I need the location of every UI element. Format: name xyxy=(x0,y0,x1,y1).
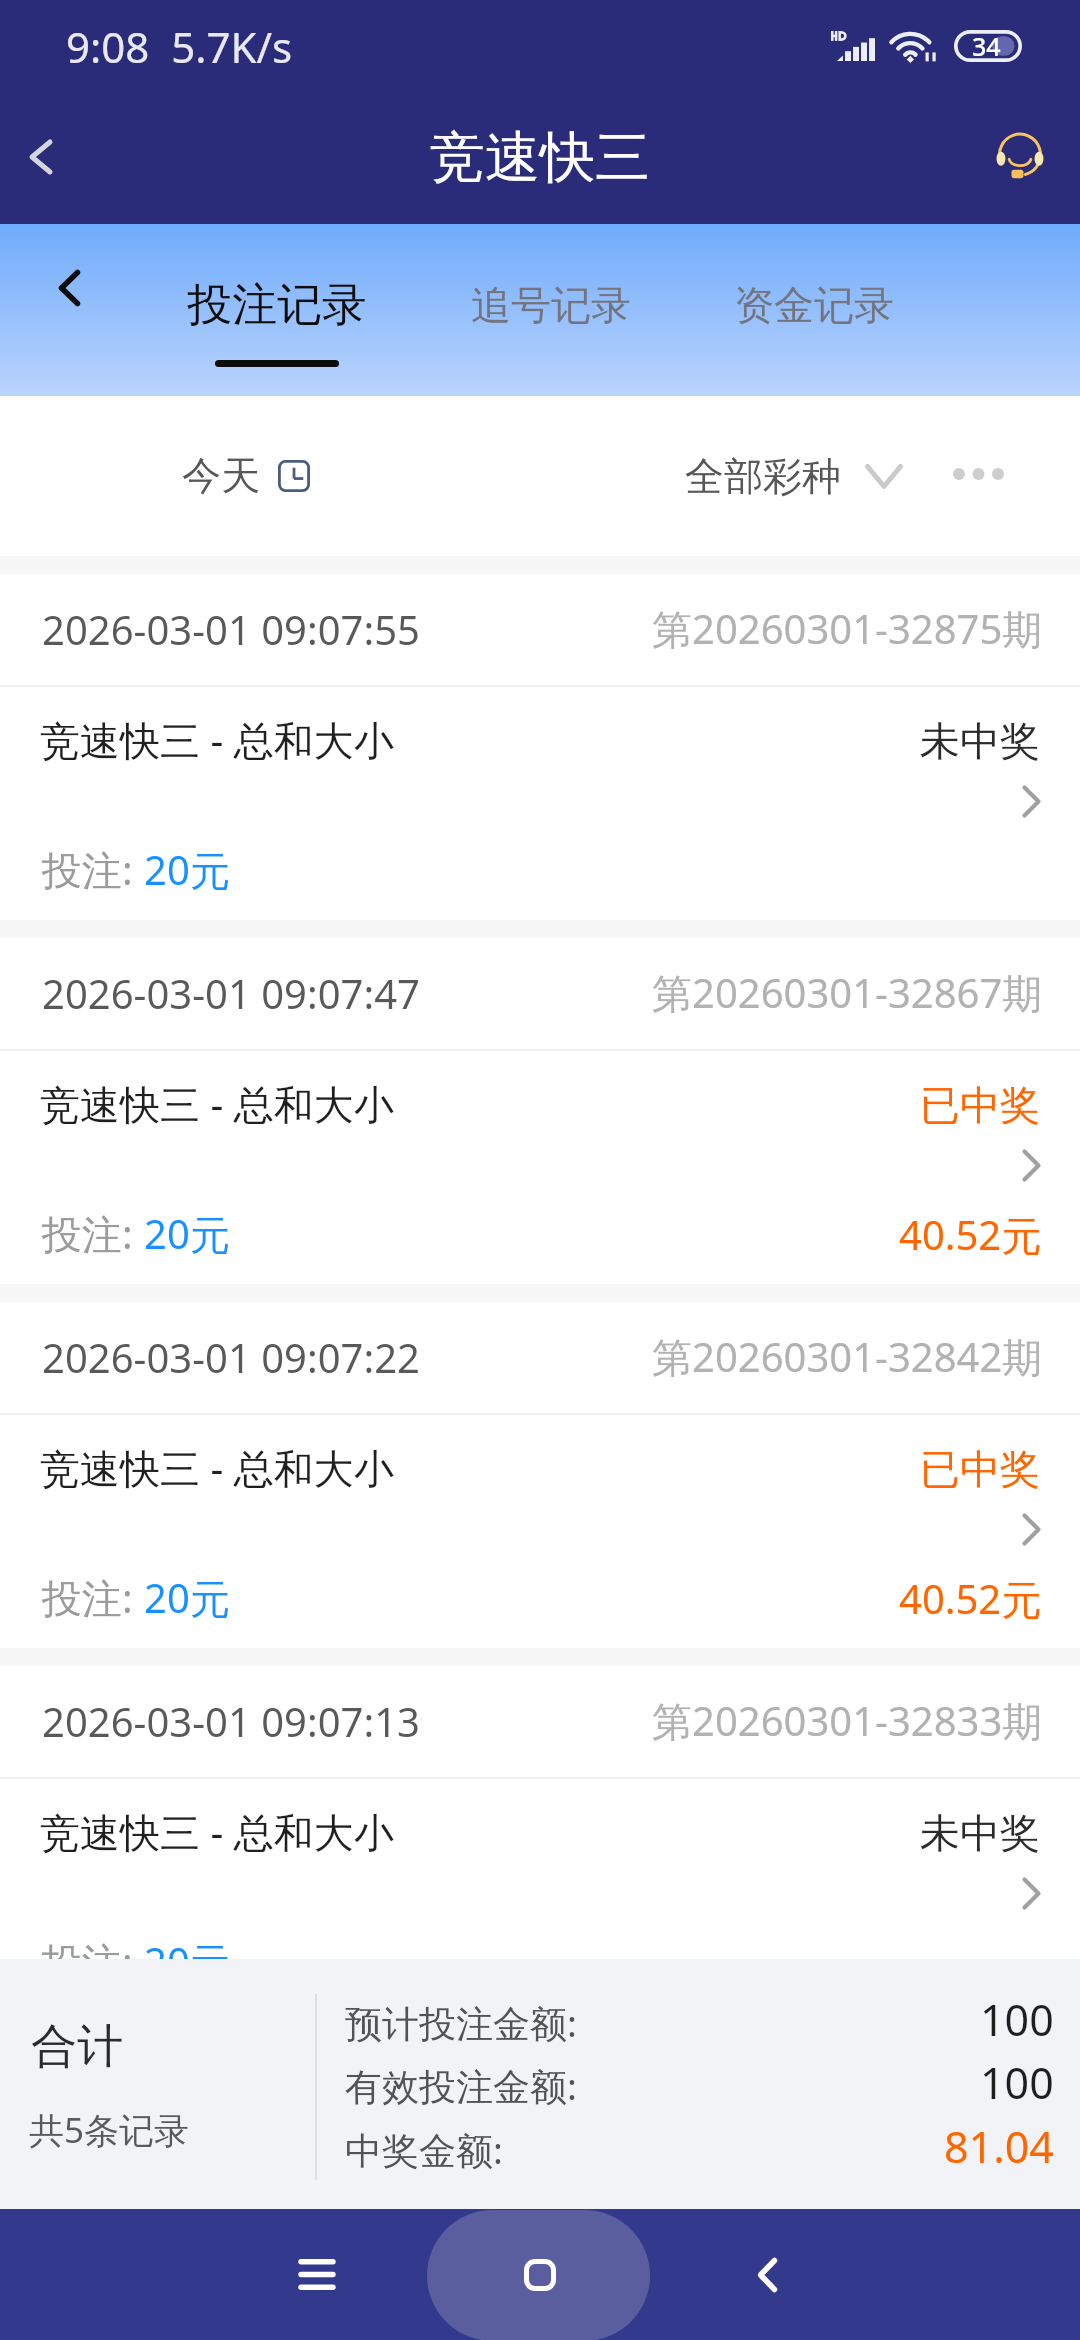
button[interactable]: Recent apps xyxy=(247,2209,387,2340)
button[interactable]: Back xyxy=(0,99,82,215)
button[interactable]: 全部彩种 xyxy=(685,450,903,502)
staticText: 共5条记录 xyxy=(29,2106,190,2154)
staticText: 20元 xyxy=(144,1570,230,1625)
staticText: 2026-03-01 09:07:55 xyxy=(42,602,420,656)
button[interactable]: 资金记录 xyxy=(699,224,929,396)
button[interactable]: Back xyxy=(697,2209,837,2340)
staticText: 40.52元 xyxy=(899,1571,1042,1626)
staticText: 81.04 xyxy=(944,2117,1054,2176)
staticText: 竞速快三 - 总和大小 xyxy=(40,1804,394,1859)
button[interactable]: More options xyxy=(936,442,1020,506)
staticText: 投注记录 xyxy=(187,277,367,334)
staticText: 34 xyxy=(972,29,1001,61)
staticText: 资金记录 xyxy=(734,280,894,330)
button[interactable]: 今天 xyxy=(182,451,310,500)
staticText: 20元 xyxy=(144,1206,230,1261)
staticText: 100 xyxy=(980,1990,1054,2049)
staticText: 竞速快三 - 总和大小 xyxy=(40,712,394,767)
staticText: 已中奖 xyxy=(920,1080,1040,1130)
staticText: 40.52元 xyxy=(899,1207,1042,1262)
staticText: 投注: xyxy=(42,1570,144,1625)
staticText: 投注: xyxy=(42,842,144,897)
button[interactable]: 追号记录 xyxy=(436,224,666,396)
staticText: 2026-03-01 09:07:47 xyxy=(42,966,420,1020)
staticText: 未中奖 xyxy=(920,716,1040,766)
staticText: 投注: xyxy=(42,1206,144,1261)
staticText: 第20260301-32867期 xyxy=(652,965,1043,1020)
staticText: 今天 xyxy=(182,451,260,500)
staticText: 竞速快三 - 总和大小 xyxy=(40,1076,394,1131)
staticText: 第20260301-32833期 xyxy=(652,1693,1043,1748)
button[interactable]: Back xyxy=(29,248,109,328)
staticText: 合计 xyxy=(31,2018,123,2076)
staticText: 20元 xyxy=(144,1934,230,1959)
staticText: 追号记录 xyxy=(471,280,631,330)
button[interactable]: 2026-03-01 09:07:13 xyxy=(0,1666,1080,1959)
staticText: 有效投注金额: xyxy=(345,2060,577,2111)
button[interactable]: Customer service xyxy=(960,99,1080,215)
staticText: 竞速快三 - 总和大小 xyxy=(40,1440,394,1495)
button[interactable]: 2026-03-01 09:07:22 xyxy=(0,1302,1080,1648)
staticText: 9:08 5.7K/s xyxy=(66,18,293,75)
staticText: 20元 xyxy=(144,842,230,897)
staticText: 竞速快三 xyxy=(430,123,650,192)
staticText: 预计投注金额: xyxy=(345,1997,577,2048)
staticText: 2026-03-01 09:07:13 xyxy=(42,1694,420,1748)
staticText: 100 xyxy=(980,2053,1054,2112)
button[interactable]: 2026-03-01 09:07:55 xyxy=(0,574,1080,920)
staticText: 已中奖 xyxy=(920,1444,1040,1494)
staticText: 第20260301-32875期 xyxy=(652,601,1043,656)
button[interactable]: 投注记录 xyxy=(162,224,392,396)
staticText: 投注: xyxy=(42,1934,144,1959)
staticText: 中奖金额: xyxy=(345,2124,503,2175)
staticText: 2026-03-01 09:07:22 xyxy=(42,1330,420,1384)
staticText: 未中奖 xyxy=(920,1808,1040,1858)
button[interactable]: 2026-03-01 09:07:47 xyxy=(0,938,1080,1284)
staticText: 全部彩种 xyxy=(685,452,841,501)
button[interactable]: Home xyxy=(470,2209,610,2340)
staticText: 第20260301-32842期 xyxy=(652,1329,1043,1384)
